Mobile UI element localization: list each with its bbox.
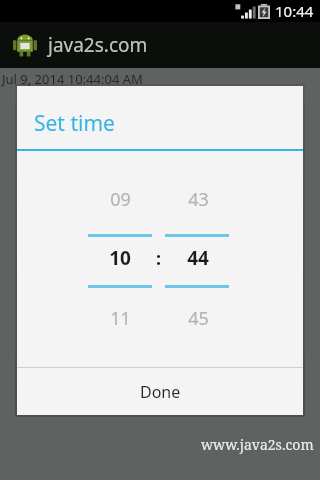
button[interactable]: 45 <box>164 304 232 332</box>
button[interactable]: 11 <box>86 304 154 332</box>
other: App icon <box>12 32 38 58</box>
staticText: Jul 9, 2014 10:44:04 AM <box>2 70 143 88</box>
staticText: 10:44 <box>275 1 314 21</box>
staticText: 09 <box>110 187 131 212</box>
button[interactable]: 43 <box>164 185 232 213</box>
staticText: 11 <box>110 306 131 331</box>
staticText: Done <box>140 381 181 403</box>
button[interactable]: 10 <box>86 244 154 272</box>
staticText: 10 <box>109 245 131 271</box>
button[interactable]: 09 <box>86 185 154 213</box>
staticText: 45 <box>188 306 209 331</box>
button[interactable]: Done <box>17 368 303 415</box>
staticText: : <box>156 246 162 271</box>
staticText: java2s.com <box>48 32 148 58</box>
staticText: 43 <box>188 187 209 212</box>
staticText: www.java2s.com <box>201 435 314 454</box>
staticText: Set time <box>34 109 115 138</box>
button[interactable]: 44 <box>164 244 232 272</box>
staticText: 44 <box>187 245 209 271</box>
